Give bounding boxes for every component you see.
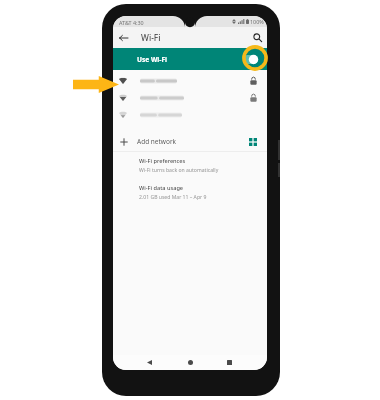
- button[interactable]: Recent apps: [217, 355, 241, 370]
- staticText: Wi-Fi data usage: [139, 184, 184, 192]
- button[interactable]: Add network: [113, 133, 267, 150]
- staticText: 2.01 GB used Mar 11 – Apr 9: [139, 194, 207, 201]
- staticText: Use Wi-Fi: [137, 55, 167, 64]
- staticText: Wi-Fi preferences: [139, 157, 186, 165]
- button[interactable]: Search: [247, 27, 267, 48]
- button[interactable]: Back: [137, 355, 161, 370]
- button[interactable]: [113, 106, 267, 123]
- staticText: Wi-Fi turns back on automatically: [139, 167, 219, 174]
- staticText: 100%: [250, 18, 264, 25]
- button[interactable]: Wi-Fi preferences: [113, 156, 267, 182]
- button[interactable]: Home: [178, 355, 202, 370]
- button[interactable]: Use Wi-Fi: [113, 48, 267, 70]
- staticText: AT&T 4:30: [119, 19, 144, 26]
- staticText: Wi-Fi: [141, 32, 161, 43]
- button[interactable]: Back: [113, 27, 134, 48]
- button[interactable]: [113, 89, 267, 106]
- button[interactable]: Wi-Fi data usage: [113, 183, 267, 209]
- staticText: Add network: [137, 137, 177, 146]
- button[interactable]: [113, 72, 267, 89]
